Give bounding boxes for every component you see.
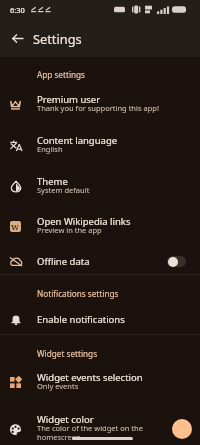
button[interactable]: Widget color [0, 406, 200, 445]
staticText: Content language [37, 134, 118, 147]
staticText: Open Wikipedia links [37, 215, 131, 228]
button[interactable]: Offline data [0, 246, 200, 276]
staticText: App settings [37, 69, 86, 80]
staticText: Premium user [37, 93, 101, 106]
button[interactable]: Theme [0, 167, 200, 205]
staticText: 6:30 [10, 5, 25, 15]
staticText: Notifications settings [37, 288, 119, 299]
staticText: Thank you for supporting this app! [37, 103, 159, 113]
button[interactable]: Enable notifications [0, 304, 200, 334]
staticText: Offline data [37, 255, 90, 268]
button[interactable]: Content language [0, 126, 200, 164]
staticText: The color of the widget on the homescree… [37, 423, 170, 443]
staticText: System default [37, 185, 90, 195]
staticText: English [37, 144, 63, 154]
button[interactable]: W [0, 207, 200, 245]
button[interactable]: Offline data [167, 256, 186, 267]
staticText: Only events [37, 381, 79, 391]
staticText: Widget events selection [37, 371, 143, 384]
button[interactable]: Back [6, 27, 28, 49]
staticText: Widget color [37, 413, 94, 426]
button[interactable]: Pick widget color [172, 419, 192, 439]
staticText: W [11, 222, 20, 232]
staticText: Settings [33, 30, 82, 47]
staticText: Theme [37, 175, 68, 188]
button[interactable]: Premium user [0, 85, 200, 123]
staticText: Enable notifications [37, 313, 125, 326]
button[interactable]: Widget events selection [0, 363, 200, 401]
staticText: Preview in the app [37, 225, 102, 235]
staticText: Widget settings [37, 348, 98, 359]
